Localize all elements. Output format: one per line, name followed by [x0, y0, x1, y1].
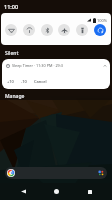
staticText: 100%: [97, 18, 108, 23]
button[interactable]: Cancel: [34, 79, 47, 84]
staticText: 11:00: [4, 3, 19, 10]
button[interactable]: Back: [12, 183, 34, 200]
button[interactable]: Auto-rotate: [94, 24, 106, 36]
staticText: Silent: [5, 50, 19, 57]
button[interactable]: +10: [7, 79, 14, 84]
button[interactable]: Mobile data: [23, 24, 35, 36]
button[interactable]: Internet: [5, 24, 17, 36]
button[interactable]: Sleep Timer · 11:30 PM · 29:3: [2, 59, 110, 89]
button[interactable]: Bluetooth: [41, 24, 53, 36]
button[interactable]: Flashlight: [76, 24, 88, 36]
staticText: Cancel: [34, 79, 47, 84]
button[interactable]: Search: [5, 167, 107, 179]
button[interactable]: Home: [45, 183, 67, 200]
button[interactable]: Recent apps: [79, 183, 101, 200]
staticText: -10: [21, 79, 27, 84]
button[interactable]: Airplane mode: [58, 24, 70, 36]
staticText: +10: [7, 79, 14, 84]
button[interactable]: Manage: [5, 93, 25, 100]
button[interactable]: -10: [21, 79, 27, 84]
staticText: Sleep Timer · 11:30 PM · 29:3: [12, 63, 63, 68]
